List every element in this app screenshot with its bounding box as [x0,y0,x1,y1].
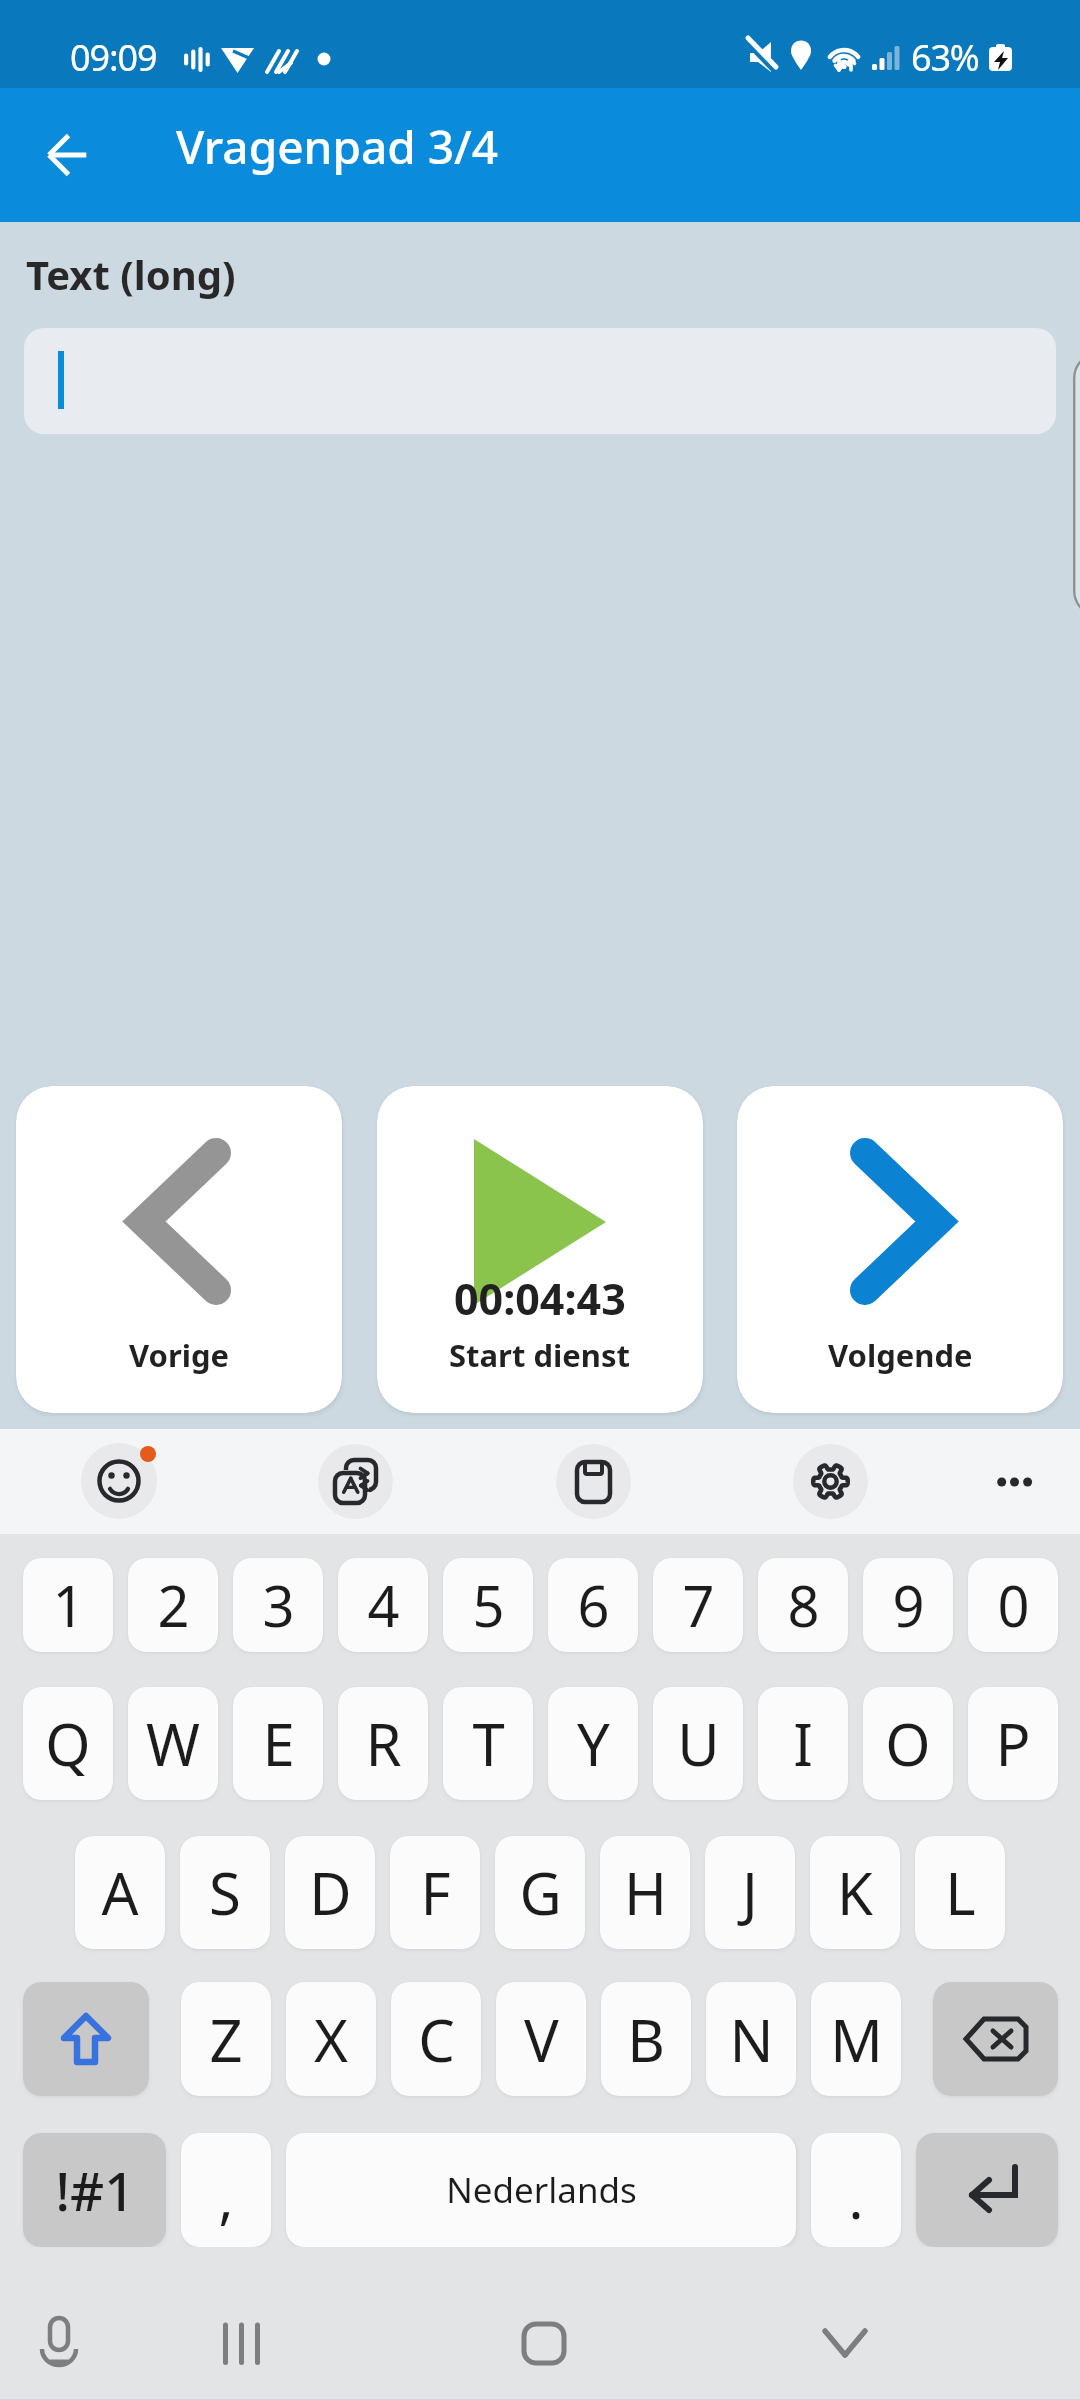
button[interactable]: 3 [233,1558,323,1652]
button[interactable]: Home [460,2247,628,2399]
button[interactable]: 6 [548,1558,638,1652]
staticText: B [627,2000,665,2079]
button[interactable]: X [286,1982,376,2096]
staticText: T [472,1704,505,1783]
button[interactable]: !#1 [23,2133,166,2247]
button[interactable]: 5 [443,1558,533,1652]
button[interactable]: Hide keyboard [770,2247,930,2399]
staticText: 63% [911,33,979,82]
staticText: 3 [262,1567,295,1643]
button[interactable]: R [338,1687,428,1800]
staticText: E [262,1704,295,1783]
button[interactable]: T [443,1687,533,1800]
button[interactable]: , [181,2133,271,2247]
staticText: Z [209,2000,243,2079]
staticText: J [742,1853,758,1932]
button[interactable]: Vorige [16,1086,342,1413]
button[interactable]: E [233,1687,323,1800]
button[interactable]: G [495,1836,585,1949]
button[interactable]: Back [19,107,115,203]
button[interactable]: S [180,1836,270,1949]
button[interactable]: W [128,1687,218,1800]
staticText: 2 [157,1567,190,1643]
button[interactable]: 7 [653,1558,743,1652]
button[interactable]: 0 [968,1558,1058,1652]
button[interactable]: U [653,1687,743,1800]
button[interactable]: 1 [23,1558,113,1652]
staticText: D [309,1853,352,1932]
button[interactable] [24,328,1056,434]
staticText: H [624,1853,667,1932]
button[interactable]: N [706,1982,796,2096]
staticText: 00:04:43 [454,1269,626,1328]
button[interactable]: 9 [863,1558,953,1652]
button[interactable]: V [496,1982,586,2096]
button[interactable]: 8 [758,1558,848,1652]
staticText: Text (long) [26,247,236,301]
button[interactable]: H [600,1836,690,1949]
staticText: S [209,1853,241,1932]
staticText: I [793,1704,813,1783]
button[interactable]: Voice input [0,2247,140,2399]
button[interactable]: Y [548,1687,638,1800]
staticText: N [729,2000,774,2079]
staticText: K [837,1853,873,1932]
staticText: F [420,1853,451,1932]
button[interactable]: Shift [23,1982,149,2096]
button[interactable]: D [285,1836,375,1949]
button[interactable]: P [968,1687,1058,1800]
staticText: . [848,2159,864,2235]
staticText: Start dienst [449,1334,631,1376]
staticText: !#1 [55,2154,135,2226]
staticText: 4 [367,1567,400,1643]
button[interactable]: Backspace [933,1982,1058,2096]
staticText: O [885,1704,931,1783]
staticText: , [218,2159,234,2235]
staticText: 9 [892,1567,925,1643]
button[interactable]: Recents [160,2247,320,2399]
button[interactable]: Nederlands [286,2133,796,2247]
staticText: R [365,1704,402,1783]
button[interactable]: . [811,2133,901,2247]
button[interactable]: Emoji [81,1443,157,1519]
button[interactable]: Enter [916,2133,1058,2247]
button[interactable]: C [391,1982,481,2096]
staticText: Vragenpad 3/4 [176,115,499,178]
staticText: 6 [577,1567,610,1643]
staticText: U [677,1704,720,1783]
button[interactable]: Volgende [737,1086,1063,1413]
button[interactable]: L [915,1836,1005,1949]
button[interactable]: Start dienst [377,1086,703,1413]
staticText: Nederlands [446,2166,637,2214]
staticText: Volgende [828,1334,973,1376]
button[interactable]: Clipboard [556,1444,631,1519]
staticText: 09:09 [70,33,157,82]
button[interactable]: More options [975,1438,1063,1526]
staticText: C [418,2000,455,2079]
staticText: Y [577,1704,610,1783]
button[interactable]: A [75,1836,165,1949]
button[interactable]: I [758,1687,848,1800]
staticText: V [524,2000,559,2079]
button[interactable]: 4 [338,1558,428,1652]
button[interactable]: Settings [793,1444,868,1519]
staticText: A [101,1853,139,1932]
staticText: G [519,1853,562,1932]
button[interactable]: Q [23,1687,113,1800]
button[interactable]: O [863,1687,953,1800]
button[interactable]: J [705,1836,795,1949]
button[interactable]: B [601,1982,691,2096]
staticText: P [995,1704,1031,1783]
button[interactable]: Z [181,1982,271,2096]
staticText: Q [45,1704,91,1783]
staticText: L [945,1853,976,1932]
button[interactable]: 2 [128,1558,218,1652]
staticText: 1 [52,1567,85,1643]
button[interactable]: K [810,1836,900,1949]
staticText: 7 [682,1567,715,1643]
button[interactable]: Translate [318,1444,393,1519]
button[interactable]: F [390,1836,480,1949]
staticText: 5 [472,1567,505,1643]
staticText: Vorige [129,1334,230,1376]
button[interactable]: M [811,1982,901,2096]
